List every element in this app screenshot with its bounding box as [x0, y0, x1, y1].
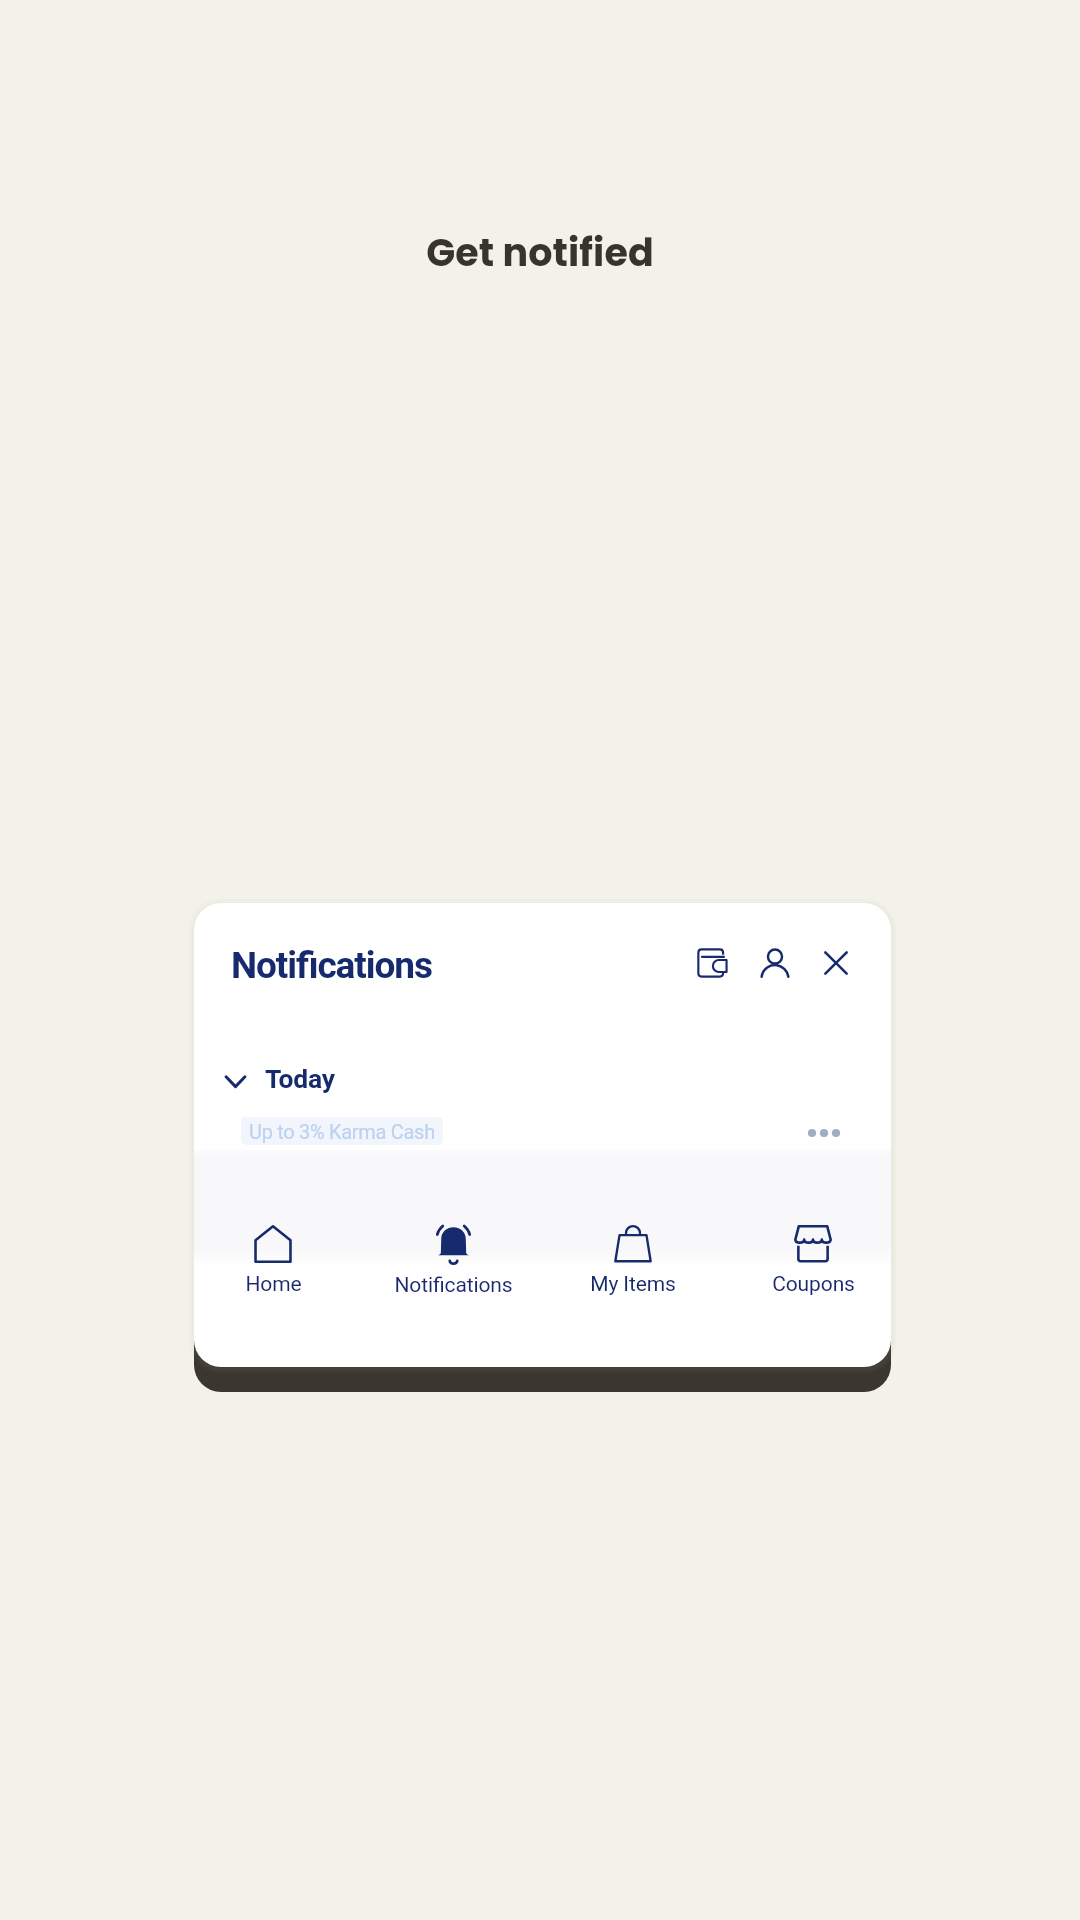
staticText: Coupons: [772, 1272, 855, 1297]
button[interactable]: Collapse Today: [218, 1063, 253, 1098]
staticText: My Items: [590, 1272, 676, 1297]
button[interactable]: Coupons: [733, 1225, 891, 1297]
button[interactable]: Up to 3% Karma Cash: [241, 1117, 443, 1145]
button[interactable]: Profile: [760, 948, 790, 978]
button[interactable]: Today: [265, 1063, 335, 1094]
staticText: Up to 3% Karma Cash: [249, 1120, 435, 1143]
button[interactable]: Wallet: [697, 948, 727, 978]
button[interactable]: Notifications: [231, 944, 432, 987]
staticText: Notifications: [394, 1273, 513, 1298]
button[interactable]: My Items: [553, 1225, 713, 1297]
staticText: Home: [245, 1272, 302, 1297]
staticText: Today: [265, 1063, 335, 1094]
button[interactable]: Notifications: [373, 1225, 533, 1298]
staticText: Get notified: [0, 226, 1080, 279]
button[interactable]: Home: [194, 1225, 353, 1297]
staticText: Notifications: [231, 944, 432, 987]
button[interactable]: More options: [794, 1115, 854, 1151]
button[interactable]: Close: [824, 951, 848, 975]
